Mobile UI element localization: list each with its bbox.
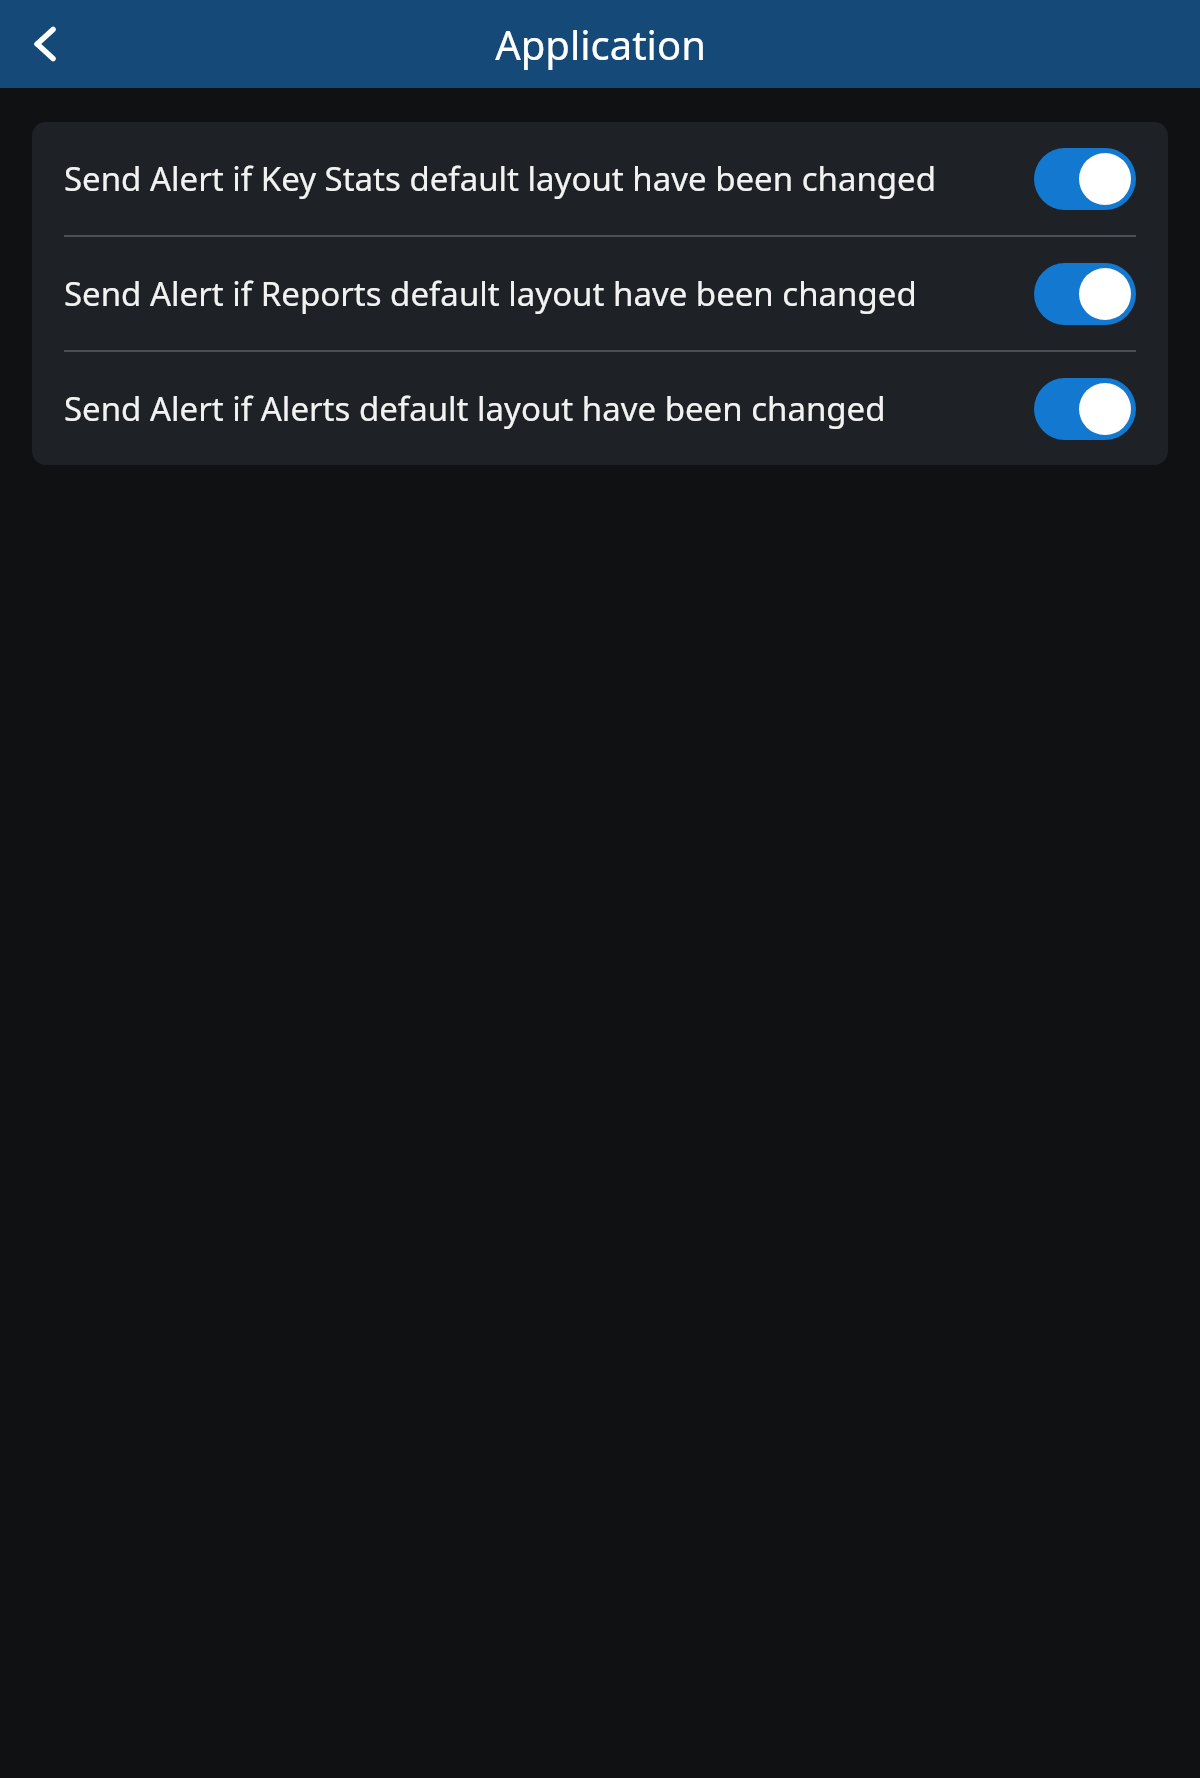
button[interactable]: Send Alert if Alerts default layout have… — [32, 352, 1168, 465]
button[interactable]: Toggle on — [1034, 148, 1136, 210]
staticText: Application — [495, 17, 706, 71]
button[interactable]: Toggle on — [1034, 263, 1136, 325]
button[interactable]: Back — [10, 8, 82, 80]
staticText: Send Alert if Alerts default layout have… — [64, 386, 886, 431]
button[interactable]: Send Alert if Reports default layout hav… — [32, 237, 1168, 350]
staticText: Send Alert if Reports default layout hav… — [64, 271, 917, 316]
button[interactable]: Send Alert if Key Stats default layout h… — [32, 122, 1168, 235]
button[interactable]: Toggle on — [1034, 378, 1136, 440]
staticText: Send Alert if Key Stats default layout h… — [64, 156, 936, 201]
